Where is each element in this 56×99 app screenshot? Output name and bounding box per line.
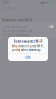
staticText: Aby dzwonić przez Wi‑Fi, podaj adres ala…	[12, 44, 44, 52]
staticText: Rozmowy przez Wi‑Fi	[2, 25, 28, 28]
button[interactable]: OK	[8, 54, 48, 61]
staticText: Rozmowy przez Wi‑Fi	[2, 18, 32, 22]
staticText: Na innych urządzeniach	[2, 29, 33, 33]
button[interactable]: Rozmowy przez Wi‑Fi	[0, 25, 56, 29]
button[interactable]: Ustawienia	[2, 5, 18, 10]
staticText: Połączenia alarmowe	[2, 33, 29, 37]
staticText: 9:41	[2, 1, 9, 4]
staticText: OK	[25, 55, 31, 60]
staticText: Ustawienia	[4, 6, 18, 10]
staticText: Rozmowy przez Wi‑Fi	[13, 40, 42, 43]
button[interactable]: Połączenia alarmowe	[0, 33, 56, 37]
button[interactable]: Na innych urządzeniach	[0, 29, 56, 33]
